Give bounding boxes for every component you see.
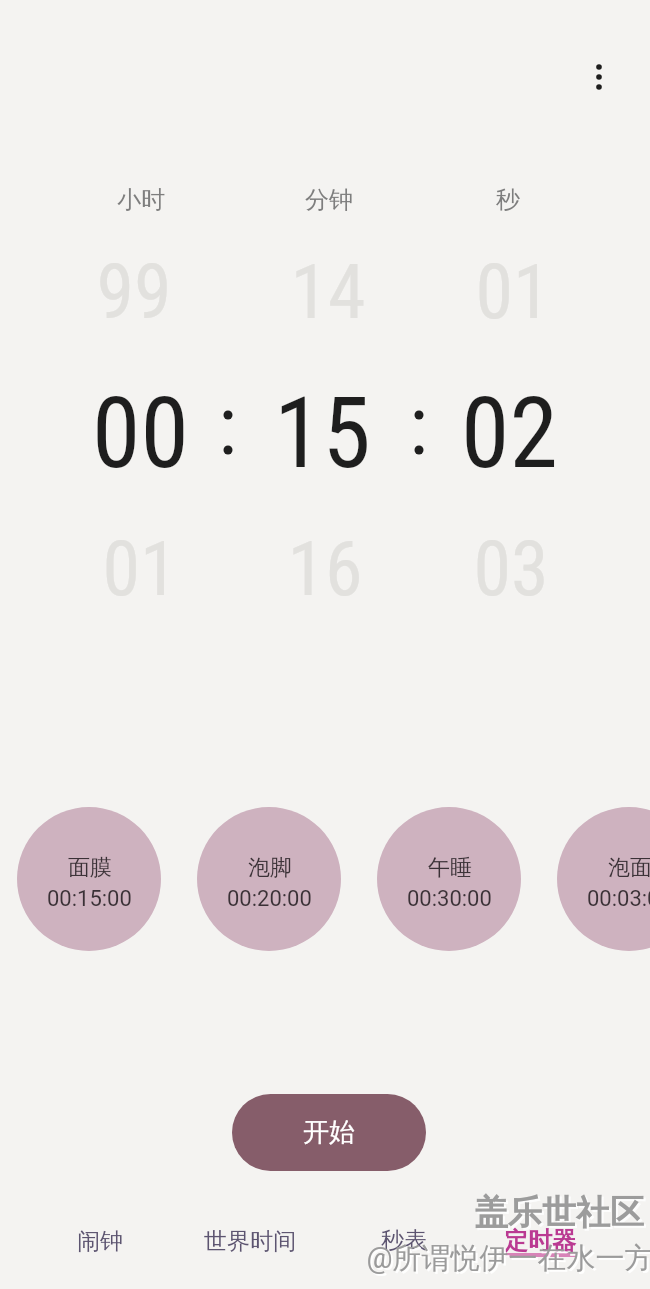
button[interactable]: 面膜 (17, 807, 161, 951)
staticText: 午睡 (428, 854, 472, 882)
staticText: 秒 (496, 185, 520, 215)
staticText: 秒表 (381, 1226, 427, 1255)
staticText: 00:20:00 (227, 886, 312, 912)
staticText: @所谓悦伊一在水一方 (366, 1240, 650, 1277)
staticText: 泡面 (608, 854, 650, 882)
button[interactable]: 秒表 (344, 1210, 464, 1270)
staticText: 01 (102, 524, 178, 613)
staticText: 00:15:00 (47, 886, 132, 912)
button[interactable]: 开始 (232, 1094, 426, 1171)
staticText: 00:03:00 (587, 886, 650, 912)
staticText: 世界时间 (204, 1227, 296, 1256)
staticText: 00 (92, 376, 189, 491)
button[interactable] (575, 53, 623, 101)
staticText: 01 (475, 247, 551, 336)
button[interactable]: 泡脚 (197, 807, 341, 951)
staticText: 15 (274, 376, 371, 491)
staticText: 盖乐世社区 (474, 1191, 644, 1234)
button[interactable]: 午睡 (377, 807, 521, 951)
staticText: 03 (473, 524, 549, 613)
staticText: 开始 (303, 1116, 355, 1149)
staticText: 盖乐世社区 (476, 1193, 646, 1236)
staticText: 16 (287, 524, 363, 613)
staticText: 面膜 (68, 854, 112, 882)
staticText: 00:30:00 (407, 886, 492, 912)
button[interactable]: 世界时间 (180, 1211, 320, 1271)
staticText: 定时器 (504, 1226, 576, 1256)
button[interactable]: 闹钟 (30, 1211, 170, 1271)
staticText: 小时 (117, 185, 165, 215)
staticText: 分钟 (305, 185, 353, 215)
staticText: 泡脚 (248, 854, 292, 882)
staticText: 02 (461, 376, 558, 491)
button[interactable]: 泡面 (557, 807, 650, 951)
staticText: @所谓悦伊一在水一方 (368, 1242, 650, 1279)
staticText: 99 (96, 247, 172, 336)
button[interactable]: 定时器 (480, 1211, 600, 1271)
staticText: 14 (290, 247, 366, 336)
staticText: 闹钟 (77, 1227, 123, 1256)
